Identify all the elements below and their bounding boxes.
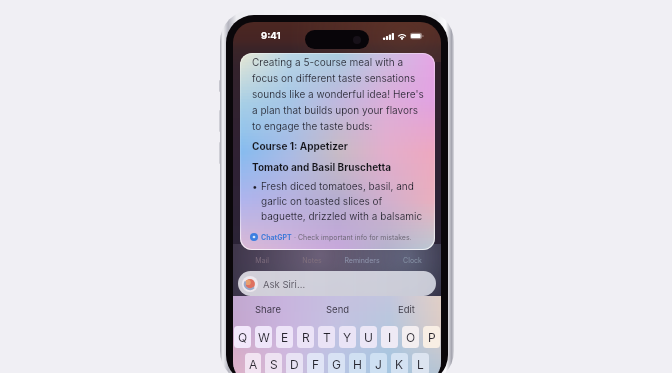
staticText: Notes — [302, 256, 322, 264]
button[interactable]: E — [276, 326, 293, 348]
button[interactable]: L — [412, 353, 429, 373]
button[interactable]: W — [255, 326, 272, 348]
staticText: H — [353, 357, 362, 372]
staticText: I — [388, 330, 392, 345]
staticText: K — [395, 357, 404, 372]
staticText: 9:41 — [261, 30, 281, 41]
staticText: S — [270, 357, 278, 372]
button[interactable]: F — [307, 353, 324, 373]
button[interactable]: Reminders — [337, 254, 387, 265]
staticText: Creating a 5-course meal with a focus on… — [252, 56, 426, 132]
staticText: U — [364, 330, 373, 345]
button[interactable]: A — [245, 353, 261, 373]
staticText: Fresh diced tomatoes, basil, and garlic … — [261, 180, 426, 223]
staticText: Reminders — [344, 256, 380, 264]
staticText: W — [258, 330, 270, 345]
staticText: E — [281, 330, 289, 345]
button[interactable]: T — [318, 326, 335, 348]
staticText: Ask Siri… — [263, 279, 306, 290]
staticText: Share — [255, 304, 282, 315]
staticText: P — [428, 330, 436, 345]
button[interactable]: Q — [234, 326, 251, 348]
staticText: J — [375, 357, 382, 372]
staticText: T — [323, 330, 331, 345]
staticText: Clock — [403, 256, 422, 264]
button[interactable]: Send — [303, 300, 372, 319]
staticText: Y — [343, 330, 352, 345]
button[interactable]: I — [381, 326, 398, 348]
staticText: Course 1: Appetizer — [252, 140, 348, 152]
staticText: L — [417, 357, 424, 372]
staticText: A — [249, 357, 258, 372]
button[interactable]: Ask Siri… — [238, 271, 436, 296]
button[interactable]: K — [391, 353, 408, 373]
button[interactable]: Share — [233, 300, 303, 319]
button[interactable]: Mail — [237, 254, 287, 265]
button[interactable]: Y — [339, 326, 356, 348]
staticText: D — [290, 357, 299, 372]
button[interactable]: Edit — [372, 300, 441, 319]
button[interactable]: Creating a 5-course meal with a focus on… — [240, 53, 435, 250]
button[interactable]: G — [328, 353, 345, 373]
staticText: G — [332, 357, 341, 372]
button[interactable]: R — [297, 326, 314, 348]
staticText: Tomato and Basil Bruschetta — [252, 161, 391, 173]
button[interactable]: U — [360, 326, 377, 348]
staticText: ChatGPT — [261, 233, 292, 241]
button[interactable]: J — [370, 353, 387, 373]
staticText: • — [252, 180, 261, 192]
button[interactable]: Clock — [387, 254, 437, 265]
button[interactable]: S — [265, 353, 282, 373]
staticText: Q — [238, 330, 248, 345]
staticText: Send — [326, 304, 350, 315]
staticText: O — [406, 330, 416, 345]
staticText: R — [302, 330, 310, 345]
staticText: · Check important info for mistakes. — [292, 233, 412, 241]
staticText: Edit — [398, 304, 415, 315]
button[interactable]: P — [423, 326, 440, 348]
button[interactable]: H — [349, 353, 366, 373]
staticText: Mail — [255, 256, 269, 264]
staticText: F — [312, 357, 320, 372]
button[interactable]: Notes — [287, 254, 337, 265]
button[interactable]: D — [286, 353, 303, 373]
button[interactable]: O — [402, 326, 419, 348]
